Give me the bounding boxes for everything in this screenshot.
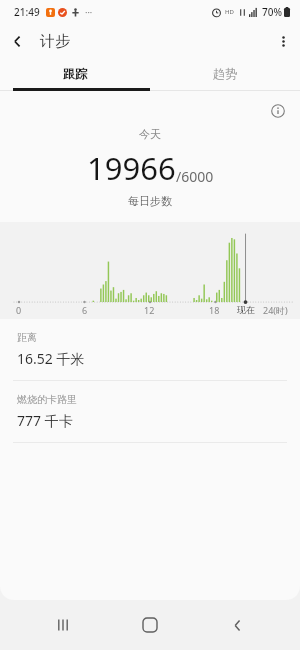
staticText: 24(时)	[263, 304, 288, 316]
button[interactable]: Back	[213, 601, 261, 649]
staticText: 12	[144, 304, 155, 316]
staticText: 777 千卡	[17, 411, 73, 430]
staticText: ···	[85, 6, 93, 18]
staticText: 计步	[40, 32, 70, 51]
staticText: 70%	[262, 5, 282, 19]
staticText: /6000	[176, 167, 214, 186]
staticText: 6	[82, 304, 88, 316]
staticText: 今天	[139, 127, 161, 141]
button[interactable]: 燃烧的卡路里	[0, 381, 300, 443]
staticText: 每日步数	[128, 194, 172, 208]
staticText: 16.52 千米	[17, 349, 85, 368]
staticText: 燃烧的卡路里	[17, 393, 77, 406]
button[interactable]: Back	[0, 24, 34, 58]
button[interactable]: 距离	[0, 319, 300, 381]
staticText: 跟踪	[63, 66, 87, 81]
button[interactable]: More options	[266, 24, 300, 58]
button[interactable]: 趋势	[150, 58, 300, 88]
staticText: 距离	[17, 331, 37, 344]
staticText: 21:49	[14, 5, 40, 19]
button[interactable]: Recents	[39, 601, 87, 649]
staticText: 0	[16, 304, 22, 316]
button[interactable]: 跟踪	[0, 58, 150, 88]
staticText: 现在	[237, 304, 255, 315]
button[interactable]: Home	[126, 601, 174, 649]
button[interactable]: Information	[266, 99, 290, 123]
staticText: 19966	[87, 147, 176, 189]
staticText: 趋势	[213, 66, 237, 81]
staticText: HD	[225, 8, 234, 16]
staticText: 18	[209, 304, 220, 316]
